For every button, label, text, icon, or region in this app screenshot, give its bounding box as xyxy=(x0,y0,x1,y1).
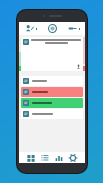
button[interactable]: Stats xyxy=(54,153,64,163)
button[interactable]: Environment list xyxy=(21,98,83,108)
button[interactable]: Lists xyxy=(40,153,50,163)
button[interactable]: Notes and sections xyxy=(21,109,83,119)
button[interactable]: Settings xyxy=(68,153,78,163)
button[interactable]: Home xyxy=(26,153,36,163)
button[interactable]: Personal xyxy=(21,76,83,86)
button[interactable]: Links xyxy=(67,23,78,34)
button[interactable]: Contacts xyxy=(24,23,35,34)
button[interactable]: Checklist xyxy=(21,87,83,97)
button[interactable]: Voice input xyxy=(21,37,83,71)
button[interactable]: Voice input xyxy=(76,64,81,69)
button[interactable]: Sync xyxy=(47,23,58,34)
